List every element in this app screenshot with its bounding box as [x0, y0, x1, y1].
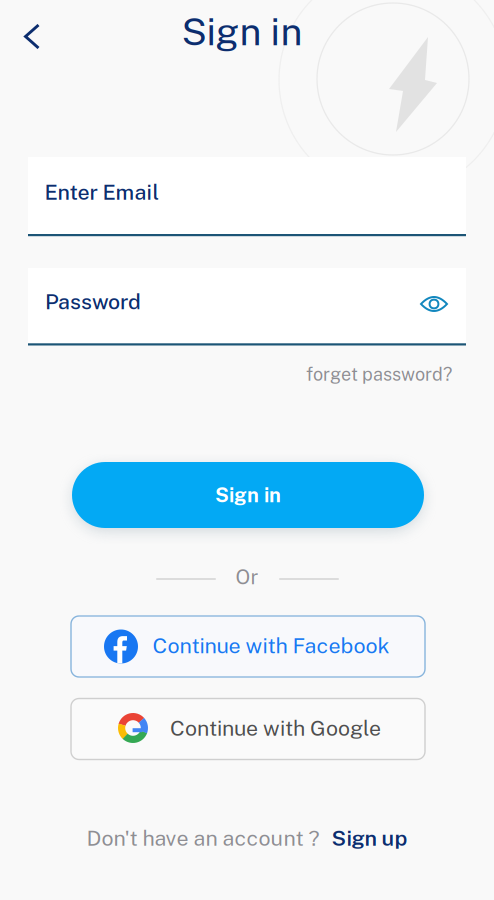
staticText: Enter Email	[44, 179, 159, 205]
staticText: Sign in	[181, 9, 302, 54]
button[interactable]: Sign up	[331, 825, 407, 851]
staticText: Sign in	[215, 483, 281, 507]
staticText: Continue with Facebook	[152, 633, 389, 658]
button[interactable]: Continue with Facebook	[71, 616, 425, 677]
button[interactable]: Show password	[412, 284, 456, 324]
staticText: Or	[235, 565, 258, 589]
staticText: Don't have an account ?	[86, 825, 319, 851]
button[interactable]: Sign in	[72, 462, 424, 528]
staticText: Password	[45, 289, 141, 314]
button[interactable]: forget password?	[300, 358, 458, 391]
button[interactable]: Back	[8, 12, 56, 60]
button[interactable]: Continue with Google	[71, 698, 425, 759]
staticText: Sign up	[331, 825, 407, 851]
staticText: forget password?	[306, 364, 452, 385]
staticText: Continue with Google	[170, 715, 381, 741]
